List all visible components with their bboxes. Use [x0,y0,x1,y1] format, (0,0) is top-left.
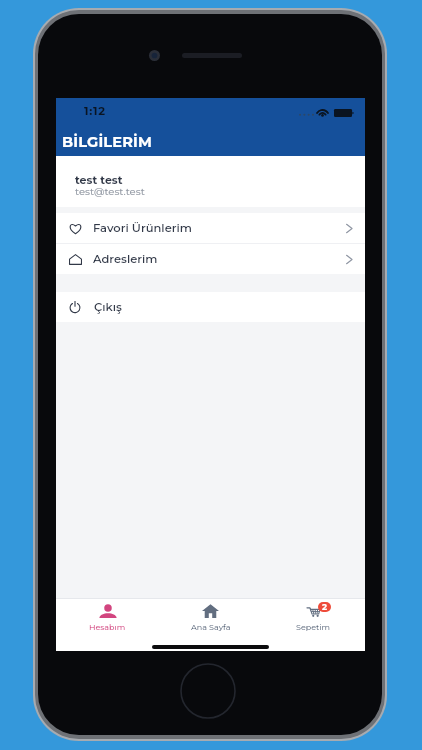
staticText: 2 [322,602,328,612]
button[interactable]: Favori Ürünlerim [56,213,365,243]
staticText: test test [75,173,123,186]
staticText: Adreslerim [93,252,158,266]
button[interactable]: Home [159,599,262,651]
staticText: Çıkış [94,300,122,314]
staticText: Ana Sayfa [191,622,231,632]
button[interactable]: Adreslerim [56,244,365,274]
button[interactable]: My account [56,599,159,651]
staticText: Hesabım [89,622,126,632]
staticText: test@test.test [75,185,145,197]
staticText: Favori Ürünlerim [93,221,192,235]
staticText: 1:12 [84,104,106,118]
staticText: Sepetim [296,622,331,632]
button[interactable]: Çıkış [56,292,365,322]
button[interactable]: Cart [262,599,365,651]
staticText: BİLGİLERİM [62,133,153,151]
